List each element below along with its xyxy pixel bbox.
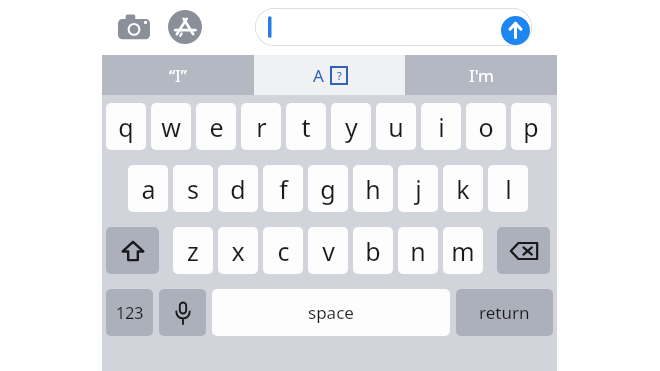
staticText: j [415, 172, 422, 206]
staticText: v [322, 234, 335, 268]
staticText: c [277, 234, 290, 268]
staticText: e [209, 110, 224, 144]
staticText: m [451, 234, 475, 268]
button[interactable]: b [353, 227, 393, 274]
staticText: p [523, 110, 539, 144]
button[interactable]: n [398, 227, 438, 274]
button[interactable]: f [263, 165, 303, 212]
button[interactable]: q [106, 103, 146, 150]
staticText: i [438, 110, 445, 144]
staticText: n [410, 234, 426, 268]
button[interactable]: d [218, 165, 258, 212]
button[interactable]: A [254, 55, 405, 95]
staticText: ? [337, 68, 342, 83]
button[interactable]: Camera [118, 14, 150, 42]
staticText: a [141, 172, 156, 206]
button[interactable]: w [151, 103, 191, 150]
button[interactable]: App Store [168, 10, 202, 44]
button[interactable]: 123 [106, 289, 153, 336]
button[interactable]: g [308, 165, 348, 212]
button[interactable]: Shift [106, 227, 159, 274]
button[interactable]: l [488, 165, 528, 212]
staticText: A [313, 64, 324, 87]
button[interactable]: t [286, 103, 326, 150]
staticText: q [118, 110, 134, 144]
staticText: y [345, 110, 358, 144]
button[interactable]: e [196, 103, 236, 150]
button[interactable]: y [331, 103, 371, 150]
button[interactable] [255, 8, 532, 46]
staticText: space [308, 301, 354, 324]
staticText: l [505, 172, 512, 206]
button[interactable]: m [443, 227, 483, 274]
button[interactable]: h [353, 165, 393, 212]
button[interactable]: I'm [405, 55, 557, 95]
button[interactable]: Backspace [497, 227, 550, 274]
button[interactable]: space [212, 289, 450, 336]
staticText: w [161, 110, 181, 144]
button[interactable]: Send [501, 16, 530, 45]
staticText: k [456, 172, 470, 206]
staticText: f [279, 172, 288, 206]
button[interactable]: j [398, 165, 438, 212]
button[interactable]: i [421, 103, 461, 150]
staticText: o [478, 110, 494, 144]
button[interactable]: u [376, 103, 416, 150]
button[interactable]: p [511, 103, 551, 150]
staticText: t [301, 110, 311, 144]
staticText: “I” [169, 64, 187, 87]
staticText: return [479, 301, 530, 324]
staticText: I'm [469, 64, 494, 87]
button[interactable]: “I” [102, 55, 254, 95]
staticText: g [320, 172, 336, 206]
staticText: b [365, 234, 381, 268]
staticText: h [365, 172, 381, 206]
staticText: u [388, 110, 404, 144]
button[interactable]: r [241, 103, 281, 150]
button[interactable]: c [263, 227, 303, 274]
button[interactable]: v [308, 227, 348, 274]
staticText: 123 [116, 302, 144, 324]
button[interactable]: k [443, 165, 483, 212]
staticText: d [230, 172, 246, 206]
staticText: x [231, 234, 245, 268]
button[interactable]: Dictation [159, 289, 206, 336]
button[interactable]: z [173, 227, 213, 274]
button[interactable]: o [466, 103, 506, 150]
button[interactable]: s [173, 165, 213, 212]
button[interactable]: a [128, 165, 168, 212]
button[interactable]: x [218, 227, 258, 274]
staticText: z [187, 234, 199, 268]
staticText: r [256, 110, 267, 144]
button[interactable]: return [456, 289, 553, 336]
staticText: s [187, 172, 199, 206]
